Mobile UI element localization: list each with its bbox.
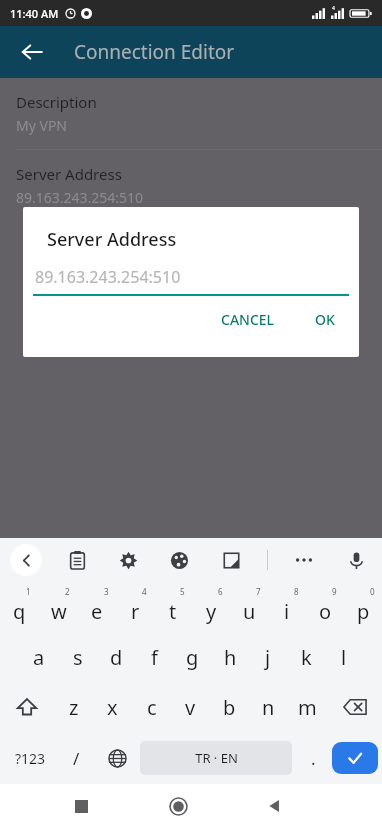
staticText: v <box>185 694 196 721</box>
staticText: x <box>107 694 118 721</box>
button[interactable]: Shift <box>0 682 54 732</box>
staticText: z <box>69 694 79 721</box>
button[interactable]: Close toolbar <box>10 544 42 576</box>
staticText: g <box>186 644 199 671</box>
button[interactable]: Clipboard <box>61 544 93 576</box>
staticText: 89.163.243.254:510 <box>16 188 144 207</box>
staticText: 89.163.243.254:510 <box>35 266 181 288</box>
button[interactable]: ?123 <box>4 732 56 784</box>
button[interactable]: b <box>210 682 249 732</box>
button[interactable]: Backspace <box>327 682 382 732</box>
staticText: d <box>110 644 123 671</box>
staticText: p <box>357 598 370 625</box>
button[interactable]: c <box>132 682 171 732</box>
staticText: i <box>284 598 290 625</box>
button[interactable]: 3 <box>78 582 116 632</box>
staticText: 5 <box>180 586 185 597</box>
button[interactable]: Home <box>156 784 200 828</box>
button[interactable]: Back <box>8 28 56 76</box>
button[interactable]: m <box>288 682 327 732</box>
button[interactable]: CANCEL <box>211 304 285 335</box>
staticText: h <box>224 644 237 671</box>
button[interactable]: Recents <box>59 784 103 828</box>
button[interactable]: f <box>135 632 173 682</box>
button[interactable]: Change language <box>96 732 138 784</box>
staticText: o <box>319 598 332 625</box>
staticText: n <box>262 694 275 721</box>
staticText: . <box>311 747 316 770</box>
staticText: Description <box>16 92 97 112</box>
staticText: OK <box>315 310 335 329</box>
staticText: e <box>91 598 103 625</box>
staticText: 4 <box>332 5 335 12</box>
button[interactable]: 8 <box>268 582 306 632</box>
button[interactable]: j <box>249 632 287 682</box>
staticText: 3 <box>104 586 109 597</box>
staticText: TR · EN <box>195 749 238 767</box>
staticText: b <box>223 694 236 721</box>
button[interactable]: TR · EN <box>140 741 292 775</box>
button[interactable]: a <box>19 632 58 682</box>
staticText: 8 <box>294 586 299 597</box>
button[interactable]: n <box>249 682 288 732</box>
button[interactable]: x <box>93 682 132 732</box>
staticText: Server Address <box>47 227 177 252</box>
button[interactable]: z <box>54 682 93 732</box>
staticText: 6 <box>218 586 223 597</box>
staticText: 1 <box>26 586 31 597</box>
button[interactable]: v <box>171 682 210 732</box>
button[interactable]: Voice input <box>340 544 372 576</box>
staticText: 4 <box>142 586 147 597</box>
staticText: j <box>265 644 271 671</box>
button[interactable]: 4 <box>116 582 154 632</box>
button[interactable]: OK <box>305 304 345 335</box>
staticText: ?123 <box>15 749 46 768</box>
staticText: 11:40 AM <box>10 6 59 21</box>
staticText: q <box>13 598 26 625</box>
button[interactable]: 6 <box>192 582 230 632</box>
staticText: s <box>73 644 83 671</box>
staticText: t <box>169 598 177 625</box>
staticText: My VPN <box>16 116 67 135</box>
button[interactable]: k <box>287 632 325 682</box>
staticText: 2 <box>65 586 70 597</box>
staticText: f <box>151 644 158 671</box>
staticText: l <box>341 644 347 671</box>
staticText: u <box>243 598 256 625</box>
staticText: / <box>73 747 80 770</box>
button[interactable]: . <box>294 732 332 784</box>
staticText: k <box>301 644 312 671</box>
staticText: Server Address <box>16 164 122 184</box>
button[interactable]: Theme <box>163 544 195 576</box>
button[interactable]: l <box>325 632 363 682</box>
button[interactable]: 9 <box>306 582 344 632</box>
button[interactable]: 1 <box>0 582 39 632</box>
staticText: 9 <box>332 586 337 597</box>
button[interactable]: Back <box>253 784 297 828</box>
staticText: y <box>206 598 217 625</box>
button[interactable]: Settings <box>112 544 144 576</box>
button[interactable]: More options <box>288 544 320 576</box>
staticText: w <box>51 598 67 625</box>
staticText: a <box>33 644 45 671</box>
staticText: CANCEL <box>221 310 275 329</box>
button[interactable]: h <box>211 632 249 682</box>
button[interactable]: g <box>173 632 211 682</box>
staticText: m <box>298 694 317 721</box>
staticText: 0 <box>370 586 375 597</box>
button[interactable]: d <box>97 632 135 682</box>
staticText: r <box>131 598 140 625</box>
button[interactable]: Enter <box>332 742 378 774</box>
staticText: Connection Editor <box>74 39 235 65</box>
button[interactable]: 0 <box>344 582 382 632</box>
button[interactable]: Resize keyboard <box>215 544 247 576</box>
button[interactable]: 2 <box>39 582 78 632</box>
button[interactable]: s <box>58 632 97 682</box>
button[interactable]: / <box>56 732 96 784</box>
button[interactable]: 5 <box>154 582 192 632</box>
button[interactable]: 7 <box>230 582 268 632</box>
staticText: c <box>147 694 157 721</box>
staticText: 7 <box>256 586 261 597</box>
